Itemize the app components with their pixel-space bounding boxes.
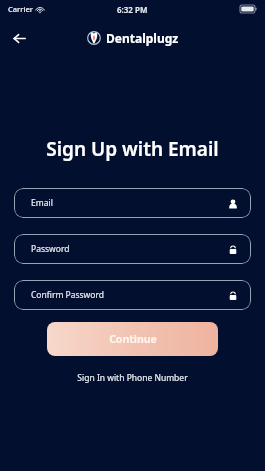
button[interactable]: Password [14, 234, 251, 264]
staticText: Password [31, 243, 70, 255]
staticText: Sign In with Phone Number [77, 372, 188, 384]
button[interactable]: Sign In with Phone Number [0, 372, 265, 384]
staticText: Sign Up with Email [0, 136, 265, 162]
staticText: Continue [109, 332, 157, 346]
button[interactable]: Confirm Password [14, 280, 251, 310]
staticText: 6:32 PM [117, 4, 148, 15]
staticText: Carrier [8, 4, 33, 14]
staticText: Confirm Password [31, 289, 104, 301]
button[interactable]: Back [4, 23, 34, 53]
button[interactable]: Continue [47, 322, 218, 356]
staticText: Dentalplugz [106, 30, 179, 46]
button[interactable]: Email [14, 188, 251, 218]
staticText: Email [31, 197, 53, 209]
